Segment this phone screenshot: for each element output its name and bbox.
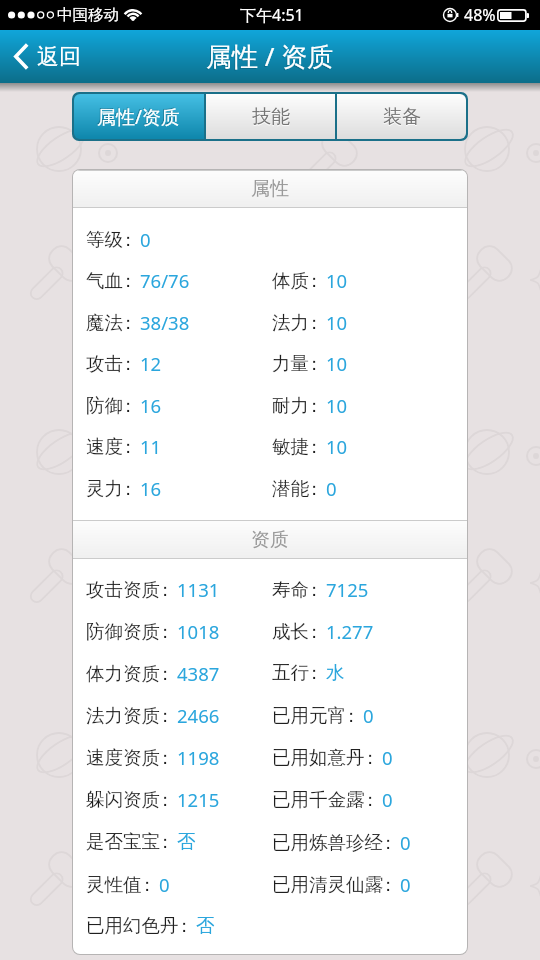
staticText: 已用千金露 — [272, 788, 365, 811]
staticText: ： — [156, 746, 173, 769]
staticText: 气血 — [86, 269, 123, 292]
staticText: ： — [379, 873, 396, 896]
staticText: 攻击资质 — [86, 578, 160, 601]
staticText: ： — [156, 578, 173, 601]
staticText: 中国移动 — [57, 5, 119, 25]
staticText: ： — [119, 477, 136, 500]
staticText: ： — [305, 620, 322, 643]
staticText: 魔法 — [86, 311, 123, 334]
staticText: 已用炼兽珍经 — [272, 831, 383, 854]
staticText: 48% — [464, 4, 496, 26]
staticText: 11 — [140, 434, 162, 459]
staticText: 法力资质 — [86, 704, 160, 727]
staticText: 体质 — [272, 269, 309, 292]
staticText: 0 — [400, 830, 411, 855]
staticText: 力量 — [272, 352, 309, 375]
staticText: 灵力 — [86, 477, 123, 500]
staticText: 寿命 — [272, 578, 309, 601]
staticText: ： — [305, 352, 322, 375]
staticText: ： — [175, 914, 192, 937]
staticText: 装备 — [383, 105, 421, 129]
staticText: 1215 — [177, 787, 220, 812]
staticText: ： — [305, 269, 322, 292]
staticText: 76/76 — [140, 268, 190, 293]
staticText: 2466 — [177, 703, 220, 728]
staticText: 耐力 — [272, 394, 309, 417]
staticText: 属性/资质 — [96, 103, 180, 129]
staticText: 五行 — [272, 661, 309, 684]
staticText: 10 — [326, 434, 348, 459]
staticText: ： — [119, 435, 136, 458]
button[interactable]: 属性/资质 — [74, 94, 204, 139]
staticText: 防御 — [86, 394, 123, 417]
staticText: 否 — [177, 830, 196, 853]
staticText: ： — [156, 662, 173, 685]
staticText: ： — [305, 311, 322, 334]
button[interactable]: 返回 — [0, 30, 91, 83]
staticText: ： — [361, 746, 378, 769]
staticText: 已用元宵 — [272, 704, 346, 727]
staticText: ： — [305, 477, 322, 500]
button[interactable]: 装备 — [337, 94, 466, 139]
staticText: 10 — [326, 351, 348, 376]
staticText: ： — [305, 394, 322, 417]
button[interactable]: 技能 — [206, 94, 335, 139]
staticText: ： — [119, 269, 136, 292]
staticText: 4387 — [177, 661, 220, 686]
staticText: ： — [305, 435, 322, 458]
staticText: 潜能 — [272, 477, 309, 500]
staticText: 属性/资质 — [97, 104, 181, 130]
staticText: 防御资质 — [86, 620, 160, 643]
staticText: 1198 — [177, 745, 220, 770]
staticText: 资质 — [251, 528, 289, 552]
staticText: ： — [305, 578, 322, 601]
staticText: 0 — [400, 872, 411, 897]
staticText: ： — [119, 352, 136, 375]
staticText: ： — [342, 704, 359, 727]
staticText: 属性 / 资质 — [206, 38, 334, 74]
staticText: 灵性值 — [86, 873, 142, 896]
staticText: 0 — [159, 872, 170, 897]
staticText: 返回 — [37, 43, 81, 71]
staticText: 装备 — [383, 106, 421, 130]
staticText: 10 — [326, 310, 348, 335]
staticText: 成长 — [272, 620, 309, 643]
staticText: 已用清灵仙露 — [272, 873, 383, 896]
staticText: 技能 — [252, 106, 290, 130]
staticText: 1018 — [177, 619, 220, 644]
staticText: 技能 — [252, 105, 290, 129]
staticText: 速度 — [86, 435, 123, 458]
staticText: 攻击 — [86, 352, 123, 375]
staticText: 0 — [326, 476, 337, 501]
staticText: 已用幻色丹 — [86, 914, 179, 937]
staticText: 10 — [326, 268, 348, 293]
staticText: 10 — [326, 393, 348, 418]
staticText: 1131 — [177, 577, 220, 602]
staticText: ： — [156, 704, 173, 727]
staticText: 敏捷 — [272, 435, 309, 458]
staticText: 体力资质 — [86, 662, 160, 685]
staticText: 已用如意丹 — [272, 746, 365, 769]
staticText: 7125 — [326, 577, 369, 602]
staticText: 0 — [382, 745, 393, 770]
staticText: ： — [379, 831, 396, 854]
staticText: 等级 — [86, 228, 123, 251]
staticText: 否 — [196, 914, 215, 937]
staticText: ： — [156, 620, 173, 643]
staticText: 躲闪资质 — [86, 788, 160, 811]
staticText: 38/38 — [140, 310, 190, 335]
staticText: 0 — [382, 787, 393, 812]
staticText: 水 — [326, 661, 345, 684]
staticText: 属性 — [251, 177, 289, 201]
staticText: 下午4:51 — [240, 4, 304, 26]
staticText: 12 — [140, 351, 162, 376]
staticText: 法力 — [272, 311, 309, 334]
staticText: ： — [138, 873, 155, 896]
staticText: 16 — [140, 393, 162, 418]
staticText: ： — [119, 394, 136, 417]
staticText: 1.277 — [326, 619, 374, 644]
staticText: 16 — [140, 476, 162, 501]
staticText: ： — [361, 788, 378, 811]
staticText: ： — [305, 661, 322, 684]
staticText: 0 — [140, 227, 151, 252]
